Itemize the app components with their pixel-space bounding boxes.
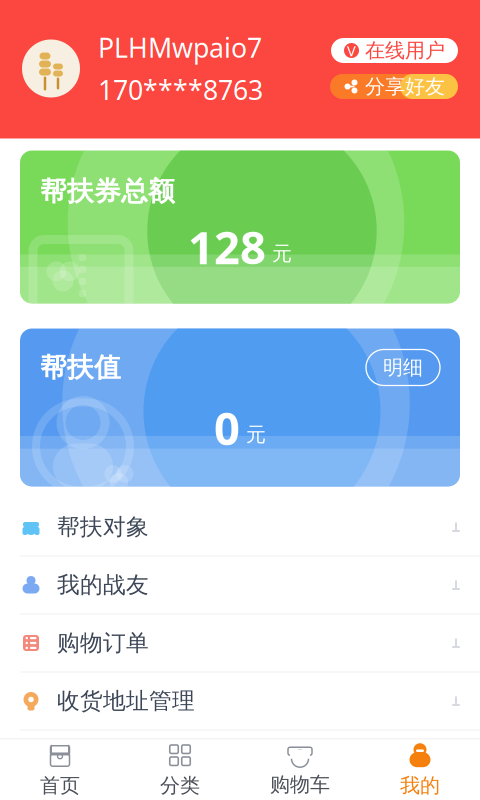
staticText: 帮扶券总额 — [40, 174, 175, 208]
staticText: 我的战友 — [57, 571, 149, 599]
staticText: 0 — [214, 397, 240, 458]
button[interactable]: V — [331, 38, 458, 63]
staticText: 收货地址管理 — [57, 687, 195, 715]
button[interactable]: 分享好友 — [330, 74, 458, 99]
staticText: PLHMwpaio7 — [98, 30, 262, 65]
staticText: 元 — [246, 422, 266, 447]
staticText: 分类 — [160, 773, 200, 798]
button[interactable]: 收货地址管理 — [0, 672, 480, 730]
staticText: 购物车 — [270, 772, 330, 797]
staticText: 首页 — [40, 773, 80, 798]
staticText: 帮扶对象 — [57, 513, 149, 541]
button[interactable]: 分类 — [120, 739, 240, 800]
staticText: 分享好友 — [365, 74, 445, 99]
staticText: V — [347, 41, 356, 60]
staticText: 我的 — [400, 773, 440, 798]
button[interactable]: 明细 — [366, 349, 440, 385]
button[interactable]: 首页 — [0, 739, 120, 800]
staticText: 元 — [272, 241, 292, 266]
staticText: 170****8763 — [98, 72, 263, 107]
button[interactable]: 帮扶对象 — [0, 498, 480, 556]
button[interactable]: 我的战友 — [0, 556, 480, 614]
staticText: 明细 — [383, 355, 423, 380]
staticText: 购物订单 — [57, 629, 149, 657]
button[interactable]: 购物订单 — [0, 614, 480, 672]
button[interactable]: 我的 — [360, 739, 480, 800]
staticText: 在线用户 — [365, 38, 445, 63]
button[interactable]: 购物车 — [240, 739, 360, 800]
staticText: 帮扶值 — [40, 351, 121, 384]
staticText: 128 — [188, 216, 266, 277]
